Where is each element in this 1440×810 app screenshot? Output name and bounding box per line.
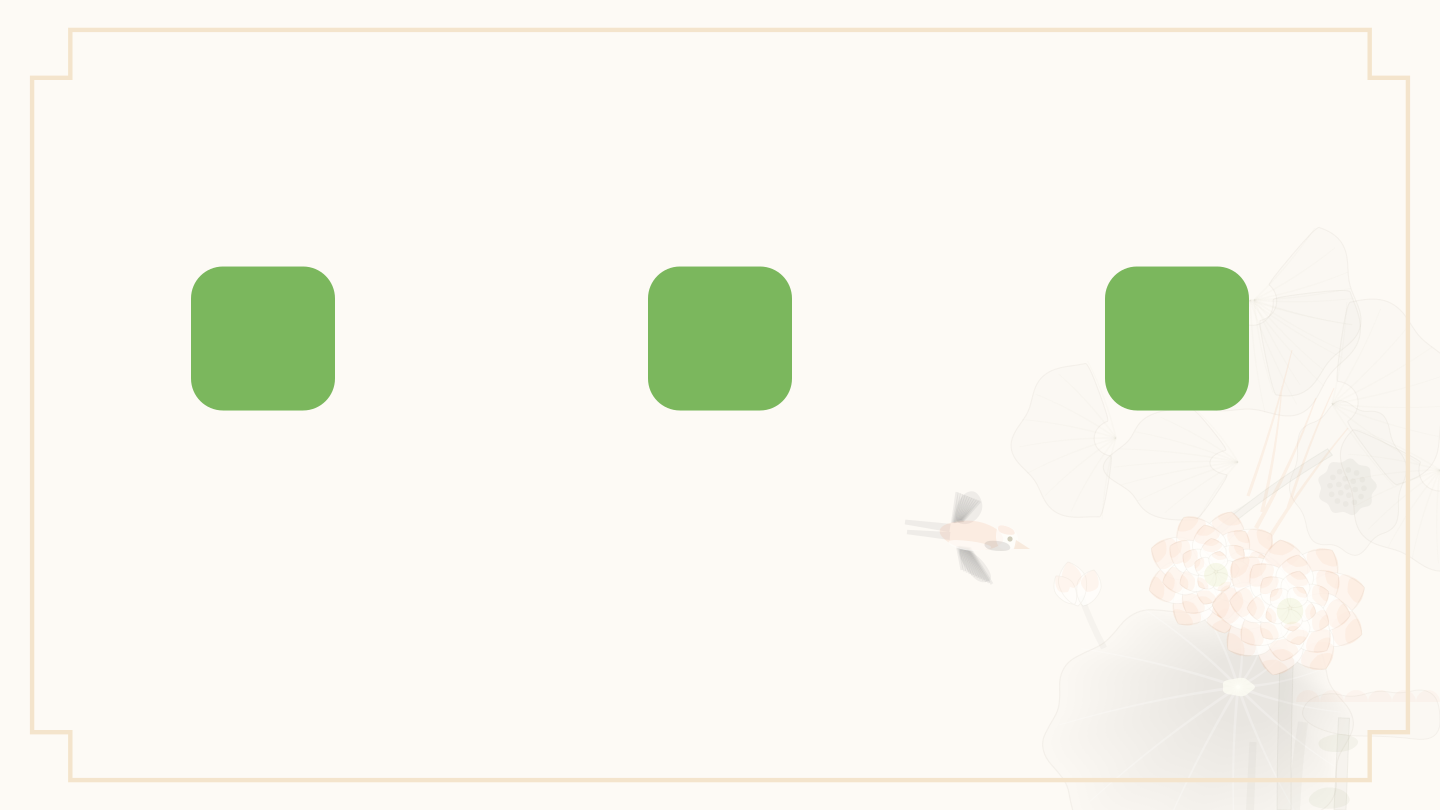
button[interactable] (648, 266, 792, 410)
button[interactable] (1105, 266, 1249, 410)
button[interactable] (191, 266, 335, 410)
